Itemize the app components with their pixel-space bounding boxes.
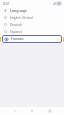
staticText: Espanol — [10, 30, 22, 34]
button[interactable]: Francais — [2, 35, 62, 43]
staticText: 9:41 — [3, 2, 10, 6]
button[interactable]: Back — [3, 8, 8, 13]
button[interactable]: Home — [29, 108, 35, 114]
button[interactable]: Espanol — [0, 28, 64, 35]
staticText: Language — [10, 8, 28, 13]
button[interactable]: Deutsch — [0, 21, 64, 28]
staticText: Francais — [11, 37, 24, 41]
staticText: English (United — [10, 16, 33, 20]
button[interactable]: Recent apps — [47, 108, 53, 114]
staticText: Deutsch — [10, 23, 23, 27]
button[interactable]: Back — [12, 108, 18, 114]
button[interactable]: English (United — [0, 14, 64, 21]
